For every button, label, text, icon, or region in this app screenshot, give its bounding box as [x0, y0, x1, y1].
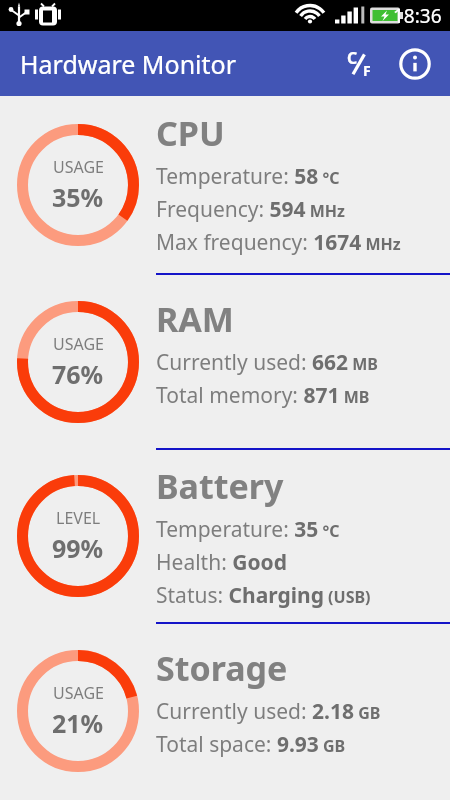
staticText: USAGE: [53, 682, 104, 704]
staticText: Battery: [156, 463, 284, 509]
button[interactable]: USAGE: [0, 623, 450, 798]
staticText: C: [347, 47, 358, 69]
staticText: Health: Good: [156, 548, 287, 577]
staticText: Max frequency: 1674 MHz: [156, 228, 401, 257]
staticText: Status: Charging (USB): [156, 581, 371, 610]
staticText: Currently used: 662 MB: [156, 348, 378, 377]
staticText: 18:36: [393, 3, 442, 29]
staticText: Temperature: 35 °C: [156, 515, 340, 544]
staticText: CPU: [156, 110, 225, 156]
staticText: F: [363, 61, 371, 80]
staticText: 35%: [52, 180, 104, 214]
staticText: Storage: [156, 645, 288, 691]
staticText: RAM: [156, 296, 234, 342]
staticText: Currently used: 2.18 GB: [156, 697, 381, 726]
staticText: Temperature: 58 °C: [156, 162, 340, 191]
button[interactable]: Info: [386, 35, 444, 93]
button[interactable]: USAGE: [0, 274, 450, 449]
button[interactable]: LEVEL: [0, 449, 450, 623]
button[interactable]: USAGE: [0, 96, 450, 274]
staticText: USAGE: [53, 333, 104, 355]
staticText: LEVEL: [56, 507, 101, 529]
staticText: 76%: [52, 357, 104, 391]
button[interactable]: Toggle Celsius Fahrenheit: [332, 37, 386, 91]
staticText: USAGE: [53, 156, 104, 178]
staticText: Total memory: 871 MB: [156, 381, 370, 410]
staticText: Total space: 9.93 GB: [156, 730, 346, 759]
staticText: Frequency: 594 MHz: [156, 195, 346, 224]
staticText: 99%: [52, 531, 104, 565]
staticText: Hardware Monitor: [20, 47, 237, 81]
staticText: 21%: [52, 706, 104, 740]
